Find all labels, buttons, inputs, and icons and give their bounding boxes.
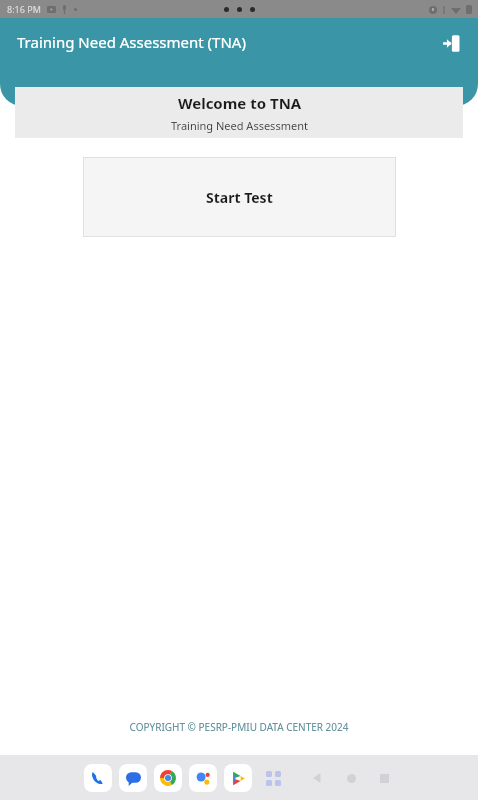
staticText: 8:16 PM [7, 3, 41, 15]
staticText: Training Need Assessment (TNA) [17, 32, 246, 52]
button[interactable]: Recents [371, 765, 397, 791]
button[interactable]: Assistant [189, 764, 217, 792]
staticText: COPYRIGHT © PESRP-PMIU DATA CENTER 2024 [0, 720, 478, 734]
button[interactable]: Home [338, 765, 364, 791]
button[interactable]: Logout [434, 26, 468, 60]
button[interactable]: Back [305, 765, 331, 791]
staticText: Welcome to TNA [178, 93, 302, 113]
button[interactable]: Play Store [224, 764, 252, 792]
staticText: Training Need Assessment [171, 118, 308, 133]
button[interactable]: Messages [119, 764, 147, 792]
staticText: Start Test [206, 188, 273, 207]
button[interactable]: Chrome [154, 764, 182, 792]
button[interactable]: All apps [259, 764, 287, 792]
button[interactable]: Phone [84, 764, 112, 792]
button[interactable]: Start Test [83, 157, 396, 237]
